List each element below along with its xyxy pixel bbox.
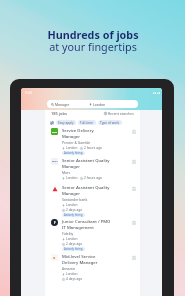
button[interactable]: Type of work: [98, 120, 122, 125]
button[interactable]: Senior Assistant Quality Manager: [45, 185, 140, 217]
button[interactable]: Save job: [132, 256, 136, 260]
button[interactable]: a: [45, 254, 140, 281]
staticText: Recent searches: [108, 111, 134, 116]
staticText: 9:30: [25, 90, 33, 95]
staticText: London: [66, 203, 78, 207]
staticText: Senior Assistant Quality Manager: [62, 185, 110, 196]
staticText: F: [54, 221, 56, 225]
button[interactable]: mars: [45, 158, 140, 180]
button[interactable]: Save job: [132, 187, 136, 191]
staticText: mars: [52, 160, 58, 163]
staticText: London: [66, 237, 78, 241]
staticText: Senior Assistant Quality Manager: [62, 158, 110, 169]
button[interactable]: F: [45, 219, 140, 251]
staticText: Hundreds of jobs: [47, 27, 139, 42]
staticText: Manager: [55, 102, 70, 107]
staticText: London: [93, 102, 106, 107]
button[interactable]: Filters: [50, 121, 54, 125]
staticText: 2 hours ago: [84, 146, 102, 150]
button[interactable]: Save job: [132, 160, 136, 164]
staticText: 2 days ago: [66, 242, 83, 246]
staticText: Actively hiring: [64, 151, 83, 155]
button[interactable]: Save job: [132, 130, 136, 134]
button[interactable]: P&G: [45, 128, 140, 155]
staticText: Procter & Gamble: [62, 140, 91, 145]
staticText: Service Delivery Manager: [62, 128, 94, 139]
staticText: Fidelity: [62, 231, 74, 236]
staticText: P&G: [52, 130, 57, 133]
staticText: Actively hiring: [64, 213, 83, 217]
staticText: London: [66, 176, 78, 180]
staticText: Mars: [62, 170, 71, 175]
staticText: 4 days ago: [66, 277, 83, 281]
button[interactable]: Manager: [47, 100, 138, 108]
staticText: a: [53, 255, 56, 260]
staticText: Amazon: [62, 266, 75, 271]
staticText: 2 days ago: [66, 208, 83, 212]
staticText: 185 jobs: [51, 111, 67, 116]
staticText: Full-time: [80, 121, 94, 125]
staticText: Easy apply: [58, 121, 74, 125]
staticText: Santander bank: [62, 197, 88, 202]
button[interactable]: Recent searches: [104, 111, 134, 116]
button[interactable]: Save job: [132, 221, 136, 225]
button[interactable]: Easy apply: [56, 120, 76, 125]
staticText: Type of work: [100, 121, 120, 125]
staticText: Mid-level Service Delivery Manager: [62, 254, 98, 265]
button[interactable]: Full-time: [78, 120, 96, 125]
staticText: 2 hours ago: [84, 176, 102, 180]
staticText: Actively hiring: [64, 247, 83, 251]
staticText: London: [66, 272, 78, 276]
staticText: at your fingertips: [49, 39, 137, 54]
staticText: London: [66, 146, 78, 150]
staticText: Junior Consultant / PMO IT Management: [62, 219, 111, 230]
